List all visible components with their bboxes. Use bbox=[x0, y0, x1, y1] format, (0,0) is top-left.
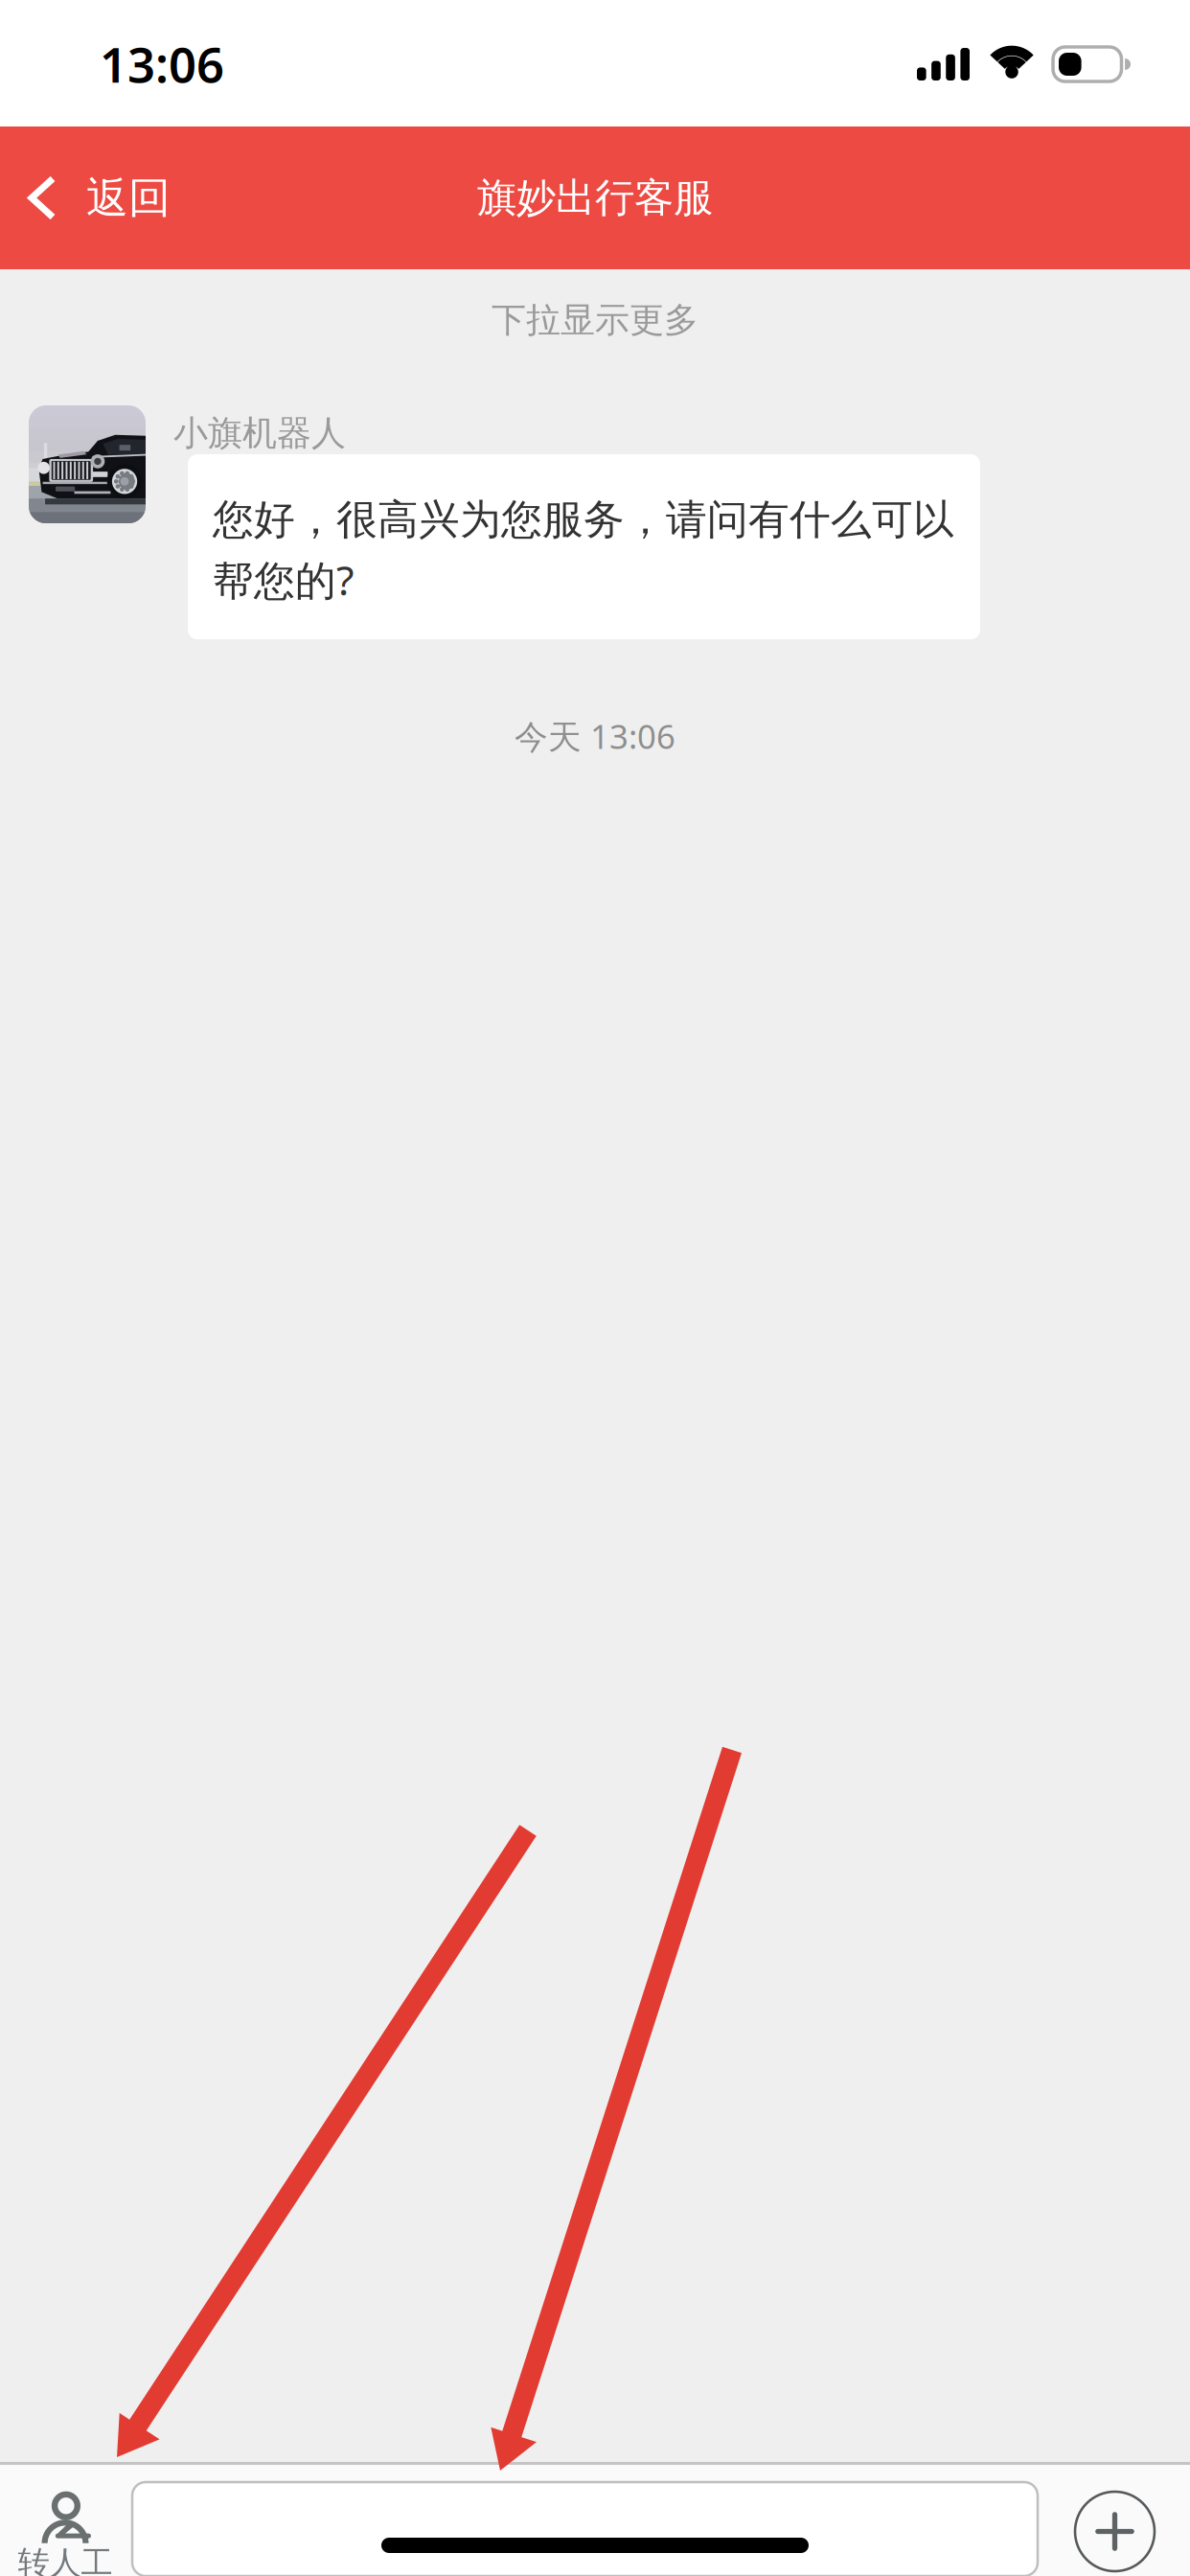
staticText: 今天 13:06 bbox=[515, 714, 675, 758]
button[interactable]: 返回 bbox=[0, 126, 199, 269]
button[interactable]: More options bbox=[1075, 2492, 1155, 2571]
staticText: 下拉显示更多 bbox=[492, 299, 698, 341]
staticText: 旗妙出行客服 bbox=[477, 174, 713, 222]
staticText: 小旗机器人 bbox=[173, 412, 346, 454]
staticText: 返回 bbox=[86, 172, 171, 224]
staticText: 13:06 bbox=[100, 32, 224, 96]
staticText: 转人工 bbox=[18, 2543, 113, 2576]
button[interactable]: 转人工 bbox=[3, 2487, 127, 2576]
staticText: 您好，很高兴为您服务，请问有什么可以帮您的? bbox=[213, 494, 954, 607]
